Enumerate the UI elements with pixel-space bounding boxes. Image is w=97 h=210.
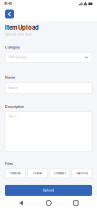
staticText: Description: [5, 104, 24, 109]
button[interactable]: Thumbnail: [5, 169, 25, 178]
staticText: Upload your item: [5, 33, 32, 36]
button[interactable]: Preview: [27, 169, 47, 178]
staticText: Preview: [33, 172, 42, 175]
button[interactable]: Home: [43, 197, 55, 209]
staticText: 10:40: [4, 1, 12, 6]
staticText: Name: [8, 86, 17, 90]
staticText: Files: [5, 162, 13, 166]
staticText: Upload: [43, 189, 54, 192]
button[interactable]: Back: [15, 197, 27, 209]
staticText: Thumbnail: [9, 172, 21, 175]
staticText: Name: [5, 75, 15, 79]
staticText: Item Upload: [5, 24, 39, 31]
staticText: Main Files: [76, 172, 87, 175]
staticText: Screenshot: [54, 172, 66, 175]
staticText: Desc...: [8, 115, 19, 118]
button[interactable]: Recent apps: [70, 197, 82, 209]
staticText: Category: [5, 45, 20, 49]
button[interactable]: Main Files: [72, 169, 92, 178]
button[interactable]: Upload: [5, 185, 92, 196]
button[interactable]: Back: [5, 9, 14, 18]
staticText: PHP Sample: [8, 56, 27, 59]
button[interactable]: Screenshot: [49, 169, 70, 178]
